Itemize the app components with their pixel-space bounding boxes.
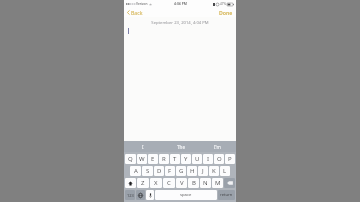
- staticText: I: [207, 155, 210, 163]
- staticText: L: [223, 167, 227, 175]
- staticText: J: [202, 167, 204, 175]
- staticText: 4:04 PM: [174, 1, 187, 6]
- staticText: V: [180, 179, 184, 187]
- button[interactable]: I: [124, 141, 162, 152]
- staticText: space: [180, 192, 192, 198]
- button[interactable]: H: [187, 166, 197, 176]
- staticText: M: [215, 179, 221, 187]
- button[interactable]: E: [148, 154, 158, 164]
- staticText: I'm: [214, 144, 221, 150]
- staticText: Y: [184, 155, 188, 163]
- staticText: Q: [128, 155, 133, 163]
- button[interactable]: Y: [181, 154, 191, 164]
- button[interactable]: A: [130, 166, 141, 176]
- button[interactable]: I: [203, 154, 213, 164]
- button[interactable]: September 23, 2014, 4:04 PM: [124, 17, 236, 141]
- button[interactable]: Backspace: [224, 178, 235, 188]
- button[interactable]: Shift: [125, 178, 136, 188]
- button[interactable]: 123: [125, 190, 135, 200]
- staticText: C: [167, 179, 171, 187]
- staticText: Z: [141, 179, 145, 187]
- button[interactable]: Dictation: [146, 190, 154, 200]
- staticText: P: [228, 155, 232, 163]
- staticText: W: [139, 155, 145, 163]
- staticText: U: [195, 155, 200, 163]
- button[interactable]: space: [155, 190, 217, 200]
- staticText: 47%: [220, 2, 226, 6]
- staticText: S: [146, 167, 150, 175]
- staticText: O: [217, 155, 222, 163]
- button[interactable]: Q: [125, 154, 136, 164]
- button[interactable]: G: [176, 166, 186, 176]
- button[interactable]: J: [198, 166, 208, 176]
- button[interactable]: K: [209, 166, 219, 176]
- button[interactable]: W: [137, 154, 147, 164]
- button[interactable]: V: [176, 178, 187, 188]
- button[interactable]: return: [218, 190, 235, 200]
- staticText: K: [212, 167, 216, 175]
- button[interactable]: Done: [218, 8, 234, 17]
- staticText: return: [220, 192, 233, 198]
- staticText: T: [173, 155, 177, 163]
- button[interactable]: C: [163, 178, 175, 188]
- button[interactable]: Change keyboard: [136, 190, 145, 200]
- button[interactable]: S: [142, 166, 153, 176]
- button[interactable]: R: [159, 154, 169, 164]
- staticText: D: [157, 167, 162, 175]
- button[interactable]: U: [192, 154, 202, 164]
- button[interactable]: I'm: [199, 141, 236, 152]
- staticText: The: [177, 144, 185, 150]
- staticText: B: [192, 179, 196, 187]
- staticText: Done: [219, 9, 233, 16]
- staticText: Back: [131, 9, 143, 16]
- button[interactable]: The: [162, 141, 199, 152]
- button[interactable]: B: [188, 178, 199, 188]
- button[interactable]: Z: [137, 178, 149, 188]
- staticText: September 23, 2014, 4:04 PM: [124, 20, 236, 26]
- button[interactable]: P: [225, 154, 235, 164]
- button[interactable]: D: [154, 166, 164, 176]
- staticText: N: [203, 179, 208, 187]
- staticText: R: [162, 155, 166, 163]
- staticText: A: [134, 167, 138, 175]
- staticText: 123: [127, 193, 134, 198]
- staticText: H: [190, 167, 195, 175]
- button[interactable]: T: [170, 154, 180, 164]
- button[interactable]: Back: [126, 8, 144, 17]
- staticText: F: [168, 167, 172, 175]
- staticText: I: [142, 144, 144, 150]
- button[interactable]: L: [220, 166, 230, 176]
- button[interactable]: N: [200, 178, 211, 188]
- button[interactable]: F: [165, 166, 175, 176]
- staticText: E: [151, 155, 155, 163]
- staticText: G: [179, 167, 184, 175]
- button[interactable]: M: [212, 178, 223, 188]
- button[interactable]: X: [150, 178, 162, 188]
- staticText: X: [154, 179, 158, 187]
- staticText: Verizon: [136, 2, 148, 6]
- button[interactable]: O: [214, 154, 224, 164]
